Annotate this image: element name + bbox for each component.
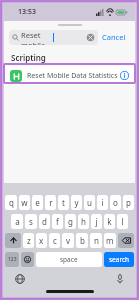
button[interactable]: x (36, 233, 47, 248)
staticText: b (80, 235, 85, 246)
staticText: p (126, 197, 131, 208)
button[interactable]: k (104, 214, 115, 229)
button[interactable]: Dictate (113, 272, 126, 285)
button[interactable]: r (45, 195, 56, 210)
button[interactable]: Info (120, 71, 129, 80)
button[interactable]: q (5, 195, 17, 210)
staticText: s (29, 216, 33, 227)
button[interactable]: Reset mobile (9, 30, 98, 45)
button[interactable]: t (58, 195, 69, 210)
button[interactable]: e (32, 195, 43, 210)
staticText: g (68, 216, 73, 227)
staticText: l (121, 216, 124, 227)
staticText: c (53, 235, 57, 246)
button[interactable]: g (65, 214, 76, 229)
staticText: n (94, 235, 99, 246)
button[interactable]: f (52, 214, 63, 229)
staticText: e (35, 197, 40, 208)
button[interactable]: n (90, 233, 102, 248)
staticText: 123 (8, 256, 17, 263)
button[interactable]: y (71, 195, 82, 210)
staticText: y (74, 197, 79, 208)
staticText: space (60, 255, 78, 264)
staticText: h (81, 216, 86, 227)
staticText: Scripting (11, 52, 46, 63)
button[interactable]: s (25, 214, 37, 229)
staticText: x (39, 235, 44, 246)
button[interactable]: i (97, 195, 108, 210)
button[interactable]: Backspace (118, 233, 134, 248)
staticText: o (113, 197, 118, 208)
staticText: Reset Mobile Data Statistics (27, 71, 120, 81)
staticText: k (107, 216, 112, 227)
staticText: i (101, 197, 104, 208)
button[interactable]: d (39, 214, 50, 229)
button[interactable]: z (23, 233, 34, 248)
button[interactable]: Clear text (86, 33, 95, 42)
button[interactable]: v (62, 233, 74, 248)
button[interactable]: a (11, 214, 23, 229)
button[interactable]: Cancel (98, 29, 130, 45)
staticText: m (106, 235, 114, 246)
button[interactable]: j (91, 214, 102, 229)
button[interactable]: Reset Mobile Data Statistics (4, 66, 135, 85)
button[interactable]: m (104, 233, 116, 248)
button[interactable]: search (104, 252, 134, 267)
button[interactable]: b (76, 233, 88, 248)
staticText: v (66, 235, 71, 246)
button[interactable]: c (49, 233, 60, 248)
button[interactable]: u (84, 195, 95, 210)
staticText: z (27, 235, 31, 246)
button[interactable]: w (19, 195, 30, 210)
staticText: search (109, 255, 130, 264)
staticText: q (9, 197, 14, 208)
button[interactable]: o (110, 195, 121, 210)
staticText: t (62, 197, 65, 208)
button[interactable]: h (78, 214, 89, 229)
staticText: u (87, 197, 92, 208)
button[interactable]: Shift (5, 233, 21, 248)
staticText: Cancel (102, 32, 126, 42)
button[interactable]: space (36, 252, 102, 267)
staticText: Reset mobile (21, 30, 53, 45)
button[interactable]: Change keyboard language (13, 272, 26, 285)
staticText: w (21, 197, 28, 208)
staticText: f (56, 216, 59, 227)
button[interactable]: p (123, 195, 134, 210)
staticText: d (42, 216, 47, 227)
staticText: 13:53 (18, 7, 36, 17)
button[interactable]: l (117, 214, 128, 229)
staticText: j (95, 216, 98, 227)
button[interactable]: Emoji (21, 252, 34, 267)
staticText: r (49, 197, 53, 208)
button[interactable]: 123 (5, 252, 19, 267)
staticText: a (15, 216, 20, 227)
